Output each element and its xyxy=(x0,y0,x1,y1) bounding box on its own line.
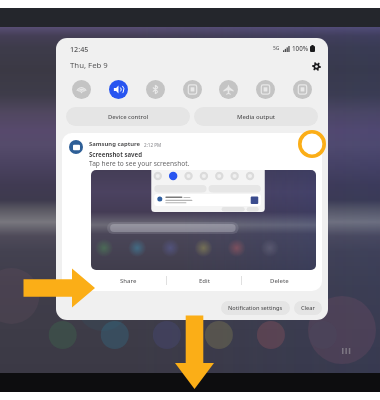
button[interactable]: Share xyxy=(91,273,166,288)
staticText: Edit xyxy=(199,277,210,285)
button[interactable]: Flight mode xyxy=(219,80,238,99)
button[interactable]: Bluetooth xyxy=(146,80,165,99)
staticText: Screenshot saved xyxy=(89,150,143,158)
staticText: Share xyxy=(120,277,137,285)
staticText: 2:12 PM xyxy=(144,142,162,148)
button[interactable]: Device control xyxy=(66,107,190,126)
staticText: Tap here to see your screenshot. xyxy=(89,159,190,168)
staticText: Delete xyxy=(270,277,289,285)
staticText: Notification settings xyxy=(228,304,283,312)
button[interactable]: Media output xyxy=(194,107,318,126)
staticText: 12:45 xyxy=(70,44,89,54)
staticText: 5G xyxy=(273,45,280,52)
button[interactable]: Auto rotate xyxy=(183,80,202,99)
staticText: Media output xyxy=(237,113,276,121)
button[interactable]: Sound xyxy=(109,80,128,99)
button[interactable]: Edit xyxy=(167,273,241,288)
button[interactable]: Clear xyxy=(294,301,322,315)
button[interactable]: Notification settings xyxy=(221,301,290,315)
button[interactable]: Samsung capture xyxy=(62,133,322,291)
staticText: Device control xyxy=(108,113,149,121)
button[interactable]: Blue light filter xyxy=(256,80,275,99)
staticText: Thu, Feb 9 xyxy=(70,60,108,71)
staticText: Clear xyxy=(301,304,315,312)
button[interactable]: Power saving xyxy=(293,80,312,99)
staticText: 100% xyxy=(292,44,309,53)
button[interactable]: Delete xyxy=(242,273,316,288)
button[interactable]: Wi-Fi xyxy=(72,80,91,99)
staticText: Samsung capture xyxy=(89,140,141,148)
button[interactable]: Settings xyxy=(307,57,325,75)
